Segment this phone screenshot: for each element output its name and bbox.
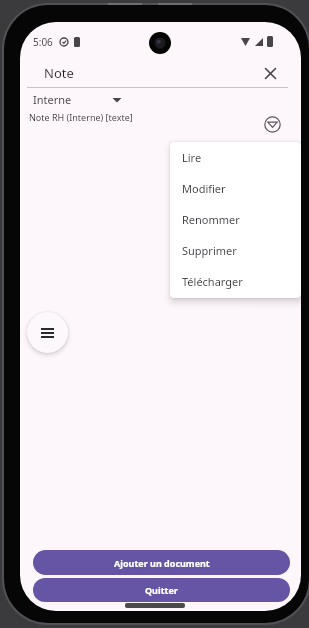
staticText: Note bbox=[44, 64, 74, 82]
button[interactable]: Interne bbox=[33, 92, 122, 107]
staticText: Renommer bbox=[182, 212, 240, 227]
button[interactable] bbox=[264, 116, 281, 133]
button[interactable]: Quitter bbox=[33, 578, 290, 602]
button[interactable] bbox=[27, 312, 68, 353]
staticText: Lire bbox=[182, 150, 202, 165]
staticText: Quitter bbox=[145, 584, 178, 596]
button[interactable]: Renommer bbox=[170, 204, 301, 235]
staticText: Note RH (Interne) [texte] bbox=[29, 111, 133, 123]
staticText: Interne bbox=[33, 92, 72, 107]
staticText: 5:06 bbox=[33, 35, 53, 49]
button[interactable]: Télécharger bbox=[170, 266, 301, 297]
button[interactable]: Modifier bbox=[170, 173, 301, 204]
staticText: Modifier bbox=[182, 181, 226, 196]
staticText: Ajouter un document bbox=[114, 557, 210, 569]
button[interactable]: Ajouter un document bbox=[33, 550, 290, 575]
button[interactable]: Supprimer bbox=[170, 235, 301, 266]
staticText: Télécharger bbox=[182, 274, 243, 289]
button[interactable]: Lire bbox=[170, 142, 301, 173]
staticText: Supprimer bbox=[182, 243, 237, 258]
button[interactable] bbox=[258, 61, 282, 85]
